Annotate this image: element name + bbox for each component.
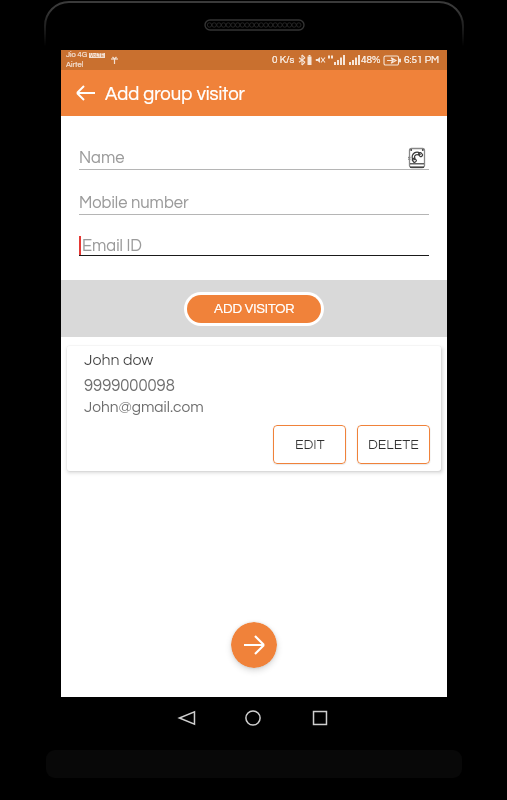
button[interactable]: Back [71, 78, 101, 108]
button[interactable]: Next [231, 622, 277, 668]
button[interactable]: Pick contact [407, 148, 427, 168]
staticText: EDIT [295, 438, 325, 452]
staticText: Mobile number [79, 194, 189, 211]
button[interactable]: EDIT [273, 425, 346, 464]
button[interactable]: ADD VISITOR [187, 295, 321, 323]
button[interactable]: Back [177, 707, 199, 729]
staticText: DELETE [368, 438, 419, 452]
staticText: Jio 4G [66, 51, 88, 59]
button[interactable]: DELETE [357, 425, 430, 464]
staticText: John@gmail.com [84, 399, 204, 415]
staticText: John dow [84, 352, 154, 368]
staticText: 48% [361, 55, 381, 65]
staticText: VoLTE [90, 53, 104, 58]
staticText: Add group visitor [105, 85, 245, 104]
staticText: Airtel [66, 61, 84, 69]
staticText: ADD VISITOR [214, 302, 295, 316]
staticText: 0 K/s [272, 55, 295, 65]
button[interactable]: Recents [309, 707, 331, 729]
button[interactable]: Home [242, 707, 264, 729]
staticText: Email ID [82, 237, 142, 254]
staticText: 9999000098 [84, 377, 175, 394]
staticText: 6:51 PM [404, 55, 439, 65]
staticText: Name [79, 149, 125, 166]
